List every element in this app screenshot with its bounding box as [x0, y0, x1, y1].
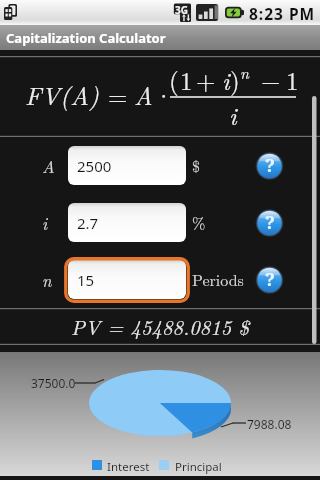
- staticText: ?: [265, 210, 275, 235]
- button[interactable]: 2.7: [68, 203, 186, 242]
- staticText: −: [261, 62, 281, 97]
- staticText: 3G: [175, 3, 188, 17]
- staticText: 2.7: [77, 213, 99, 233]
- staticText: 1: [180, 62, 193, 97]
- staticText: (: [169, 62, 179, 97]
- staticText: n: [42, 268, 52, 292]
- button[interactable]: 15: [68, 260, 186, 299]
- staticText: n: [240, 61, 249, 84]
- staticText: %: [192, 211, 206, 234]
- staticText: PV = 45488.0815 $: [71, 312, 249, 341]
- staticText: Capitalization Calculator: [6, 29, 166, 47]
- button[interactable]: 2500: [68, 146, 186, 185]
- staticText: ·: [154, 77, 174, 112]
- staticText: $: [192, 154, 201, 177]
- staticText: 1: [286, 62, 299, 97]
- staticText: A: [134, 77, 153, 112]
- staticText: =: [108, 77, 128, 112]
- staticText: 8:23 PM: [249, 3, 316, 24]
- staticText: i: [222, 62, 230, 97]
- staticText: 7988.08: [247, 416, 292, 432]
- staticText: Principal: [175, 459, 222, 475]
- staticText: 15: [77, 270, 95, 290]
- staticText: ): [230, 62, 240, 97]
- button[interactable]: Help: [255, 209, 284, 237]
- staticText: Periods: [192, 268, 244, 291]
- staticText: ?: [265, 153, 275, 178]
- staticText: Interest: [107, 459, 150, 475]
- staticText: 2500: [77, 156, 112, 176]
- button[interactable]: Help: [255, 152, 284, 180]
- button[interactable]: Help: [255, 266, 284, 294]
- staticText: A: [42, 154, 55, 178]
- staticText: +: [196, 62, 216, 97]
- staticText: i: [229, 97, 237, 132]
- staticText: ?: [265, 267, 275, 292]
- staticText: FV(A): [25, 77, 99, 112]
- staticText: 37500.0: [31, 375, 76, 391]
- staticText: i: [42, 211, 48, 235]
